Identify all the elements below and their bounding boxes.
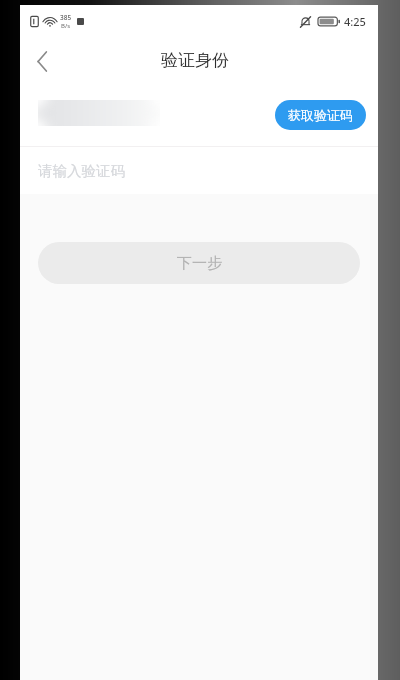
staticText: B/s [61, 22, 71, 30]
staticText: 获取验证码 [288, 107, 353, 123]
staticText: 下一步 [177, 254, 222, 273]
button[interactable]: 请输入验证码 [20, 147, 378, 194]
staticText: 385 [60, 13, 72, 22]
button[interactable]: Back [20, 39, 64, 83]
staticText: 验证身份 [161, 50, 229, 71]
staticText: 4:25 [344, 14, 366, 29]
button[interactable]: 下一步 [38, 242, 360, 284]
button[interactable]: 获取验证码 [275, 100, 366, 130]
staticText: 请输入验证码 [38, 162, 125, 180]
